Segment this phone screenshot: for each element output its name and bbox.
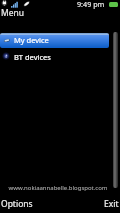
staticText: Exit [104, 198, 119, 210]
staticText: 9:49 pm [77, 0, 105, 9]
button[interactable]: My device [0, 33, 109, 48]
staticText: My device [14, 35, 49, 45]
staticText: Options [1, 198, 33, 210]
other: USB connected [0, 0, 9, 9]
other: Battery [109, 2, 118, 7]
staticText: Menu [1, 7, 25, 19]
other: Data transfer [21, 0, 30, 9]
staticText: www.nokiaannabelle.blogspot.com [0, 184, 118, 192]
staticText: BT devices [14, 52, 51, 62]
other: Signal strength [10, 1, 19, 8]
button[interactable]: Exit [104, 198, 119, 210]
button[interactable]: Options [1, 198, 33, 210]
button[interactable]: BT devices [0, 49, 109, 63]
